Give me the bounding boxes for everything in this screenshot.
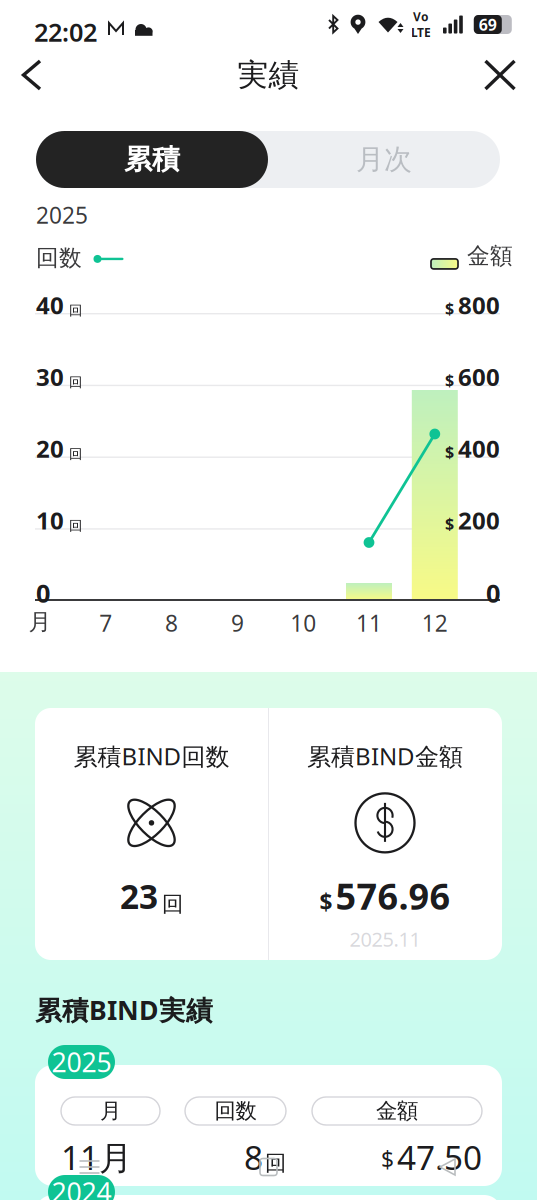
staticText: 10 [290,608,316,638]
staticText: 回 [69,374,82,391]
staticText: 200 [458,504,500,536]
staticText: 20 [36,432,64,464]
staticText: 回数 [214,1098,256,1124]
staticText: 9 [231,608,244,638]
staticText: 回 [69,446,82,462]
staticText: $ [445,369,454,391]
staticText: 回 [69,302,82,319]
staticText: 69 [479,14,497,35]
staticText: 47.50 [397,1135,482,1179]
staticText: 2025 [36,200,88,230]
staticText: 月次 [356,142,412,177]
button[interactable]: 戻る [4,46,60,104]
staticText: 7 [99,608,112,638]
staticText: 11 [356,608,382,638]
button[interactable]: 戻る [358,1152,537,1182]
staticText: 2024 [51,1174,111,1200]
staticText: 累積BIND金額 [307,740,463,772]
staticText: 金額 [467,242,513,270]
staticText: 11月 [61,1135,132,1179]
staticText: 累積BIND回数 [73,740,229,772]
button[interactable]: 累積BIND回数 [35,708,268,960]
button[interactable]: 累積BIND金額 [268,708,502,960]
staticText: 12 [422,608,448,638]
staticText: 金額 [376,1098,418,1124]
button[interactable]: ホーム [179,1152,358,1182]
staticText: 23 [120,874,158,918]
staticText: 600 [458,361,500,393]
staticText: 2025 [51,1044,111,1080]
staticText: 実績 [237,56,299,94]
staticText: 累積BIND実績 [35,992,213,1027]
staticText: 0 [486,576,500,610]
staticText: 回 [69,518,82,534]
staticText: 800 [458,289,500,321]
staticText: 8 [244,1135,263,1179]
staticText: $ [381,1144,394,1174]
staticText: 8 [165,608,178,638]
staticText: $ [445,513,454,534]
staticText: 40 [36,289,64,321]
button[interactable]: 累積 [36,131,268,188]
staticText: 累積 [124,142,180,177]
staticText: $ [445,298,454,319]
staticText: 30 [36,361,64,393]
staticText: $ [445,441,454,462]
staticText: 回 [265,1150,286,1176]
staticText: 0 [36,576,50,610]
staticText: 2025.11 [349,926,420,952]
staticText: 回 [162,891,183,917]
staticText: 576.96 [335,872,450,920]
staticText: 月 [28,608,51,636]
button[interactable]: 月次 [268,131,500,188]
staticText: 400 [458,432,500,464]
staticText: 10 [36,504,64,536]
staticText: 回数 [36,244,82,272]
staticText: LTE [411,24,431,40]
staticText: 月 [100,1098,121,1124]
button[interactable]: メニュー [0,1152,179,1182]
staticText: 22:02 [34,15,97,49]
button[interactable]: 閉じる [470,46,530,104]
staticText: $ [319,887,332,917]
staticText: Vo [413,9,429,24]
